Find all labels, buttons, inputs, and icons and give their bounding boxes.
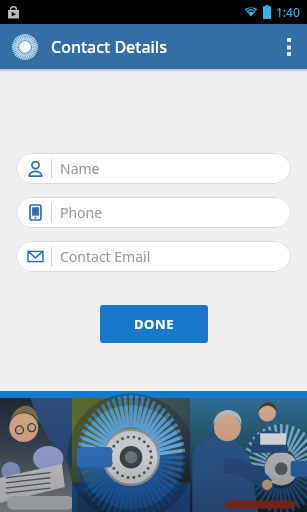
staticText: Name	[60, 159, 100, 178]
button[interactable]: Name	[16, 153, 291, 184]
button[interactable]: DONE	[100, 305, 208, 343]
staticText: 1:40	[276, 4, 300, 20]
button[interactable]: More options	[271, 24, 307, 69]
button[interactable]: Turbine rotor	[72, 398, 190, 512]
staticText: DONE	[134, 315, 175, 333]
staticText: Phone	[60, 203, 103, 222]
button[interactable]: Technician inspecting component	[0, 398, 72, 512]
button[interactable]: Contact Email	[16, 241, 291, 272]
button[interactable]: Phone	[16, 197, 291, 228]
staticText: Contact Details	[51, 36, 167, 58]
button[interactable]: Engineers at work	[190, 398, 307, 512]
staticText: Contact Email	[60, 247, 151, 266]
